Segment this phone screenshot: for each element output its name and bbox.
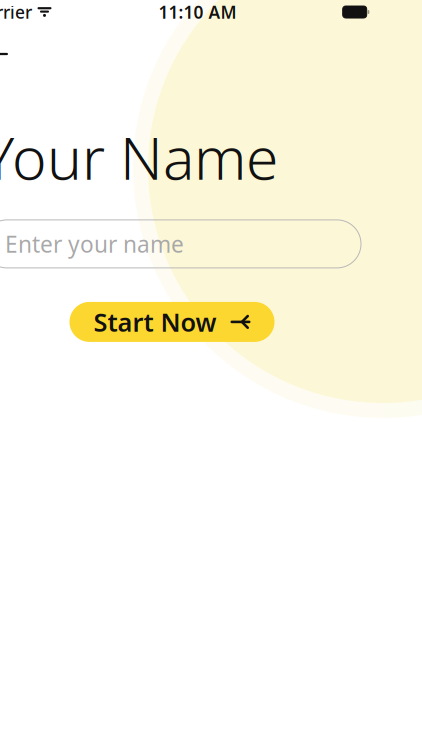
staticText: Carrier	[0, 0, 32, 23]
button[interactable]: Start Now	[69, 302, 274, 342]
staticText: Enter your name	[5, 229, 184, 259]
button[interactable]: Enter your name	[0, 220, 361, 268]
button[interactable]: Back	[0, 32, 21, 76]
staticText: Start Now	[93, 305, 216, 339]
staticText: 11:10 AM	[158, 0, 236, 23]
staticText: Your Name	[0, 118, 278, 196]
